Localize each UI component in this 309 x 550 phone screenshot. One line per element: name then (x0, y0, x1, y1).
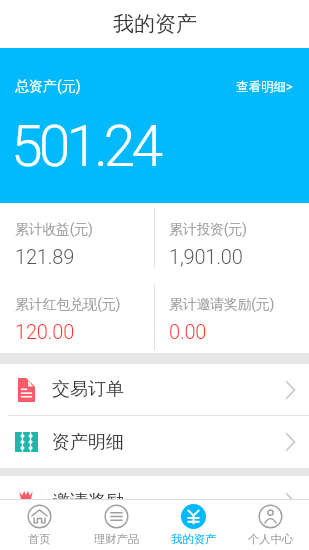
other: Products (104, 504, 129, 529)
staticText: 我的资产 (171, 532, 217, 546)
staticText: 1,901.00 (169, 245, 243, 268)
button[interactable]: My assets (155, 500, 232, 550)
staticText: 累计红包兑现(元) (15, 296, 120, 314)
staticText: 查看明细> (236, 79, 293, 95)
other: Profile (258, 504, 283, 529)
button[interactable]: 邀请奖励 (0, 476, 309, 527)
button[interactable]: Home (0, 500, 78, 550)
other: Home (27, 504, 52, 529)
staticText: 理财产品 (94, 532, 140, 546)
staticText: 501.24 (11, 113, 160, 180)
staticText: 0.00 (169, 320, 207, 343)
other: My assets (181, 504, 206, 529)
button[interactable]: Profile (232, 500, 309, 550)
staticText: 个人中心 (248, 532, 294, 546)
staticText: 邀请奖励 (52, 490, 124, 513)
staticText: 首页 (28, 532, 51, 546)
staticText: 总资产(元) (15, 78, 81, 96)
staticText: 120.00 (15, 320, 75, 343)
staticText: 资产明细 (52, 431, 124, 454)
button[interactable]: 交易订单 (0, 364, 309, 415)
staticText: 我的资产 (113, 11, 197, 37)
button[interactable]: 资产明细 (0, 416, 309, 468)
button[interactable]: Products (78, 500, 155, 550)
staticText: 累计邀请奖励(元) (169, 296, 274, 314)
staticText: 交易订单 (52, 378, 124, 401)
staticText: 121.89 (15, 245, 75, 268)
staticText: 累计收益(元) (15, 221, 93, 239)
button[interactable]: 查看明细> (224, 75, 309, 99)
staticText: 累计投资(元) (169, 221, 247, 239)
